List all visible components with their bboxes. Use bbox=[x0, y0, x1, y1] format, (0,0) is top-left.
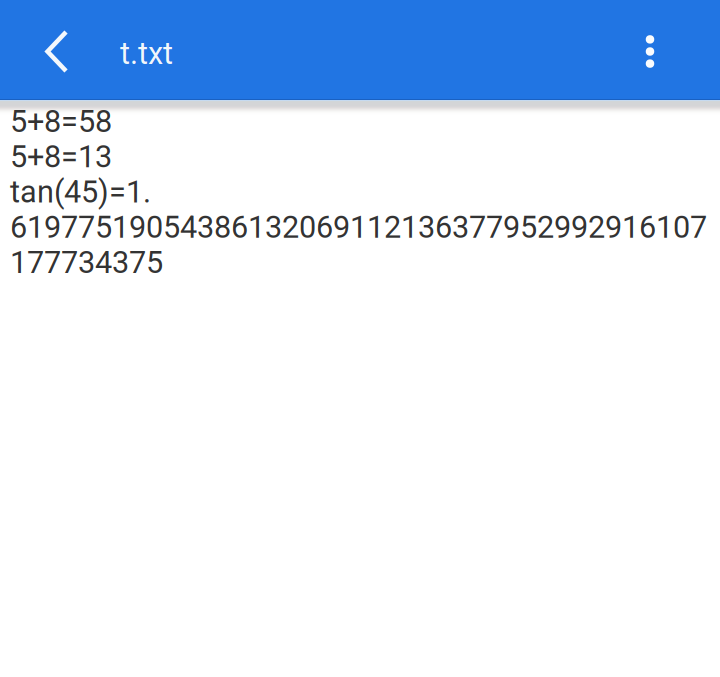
button[interactable]: More options bbox=[608, 0, 692, 99]
staticText: 5+8=13 bbox=[10, 139, 112, 174]
staticText: 6197751905438613206911213637795299291610… bbox=[10, 210, 707, 245]
button[interactable]: t.txt bbox=[104, 0, 189, 99]
staticText: 177734375 bbox=[10, 245, 163, 280]
staticText: tan(45)=1. bbox=[10, 174, 151, 210]
staticText: t.txt bbox=[120, 35, 173, 71]
button[interactable]: Back bbox=[0, 0, 99, 99]
staticText: 5+8=58 bbox=[10, 104, 112, 139]
